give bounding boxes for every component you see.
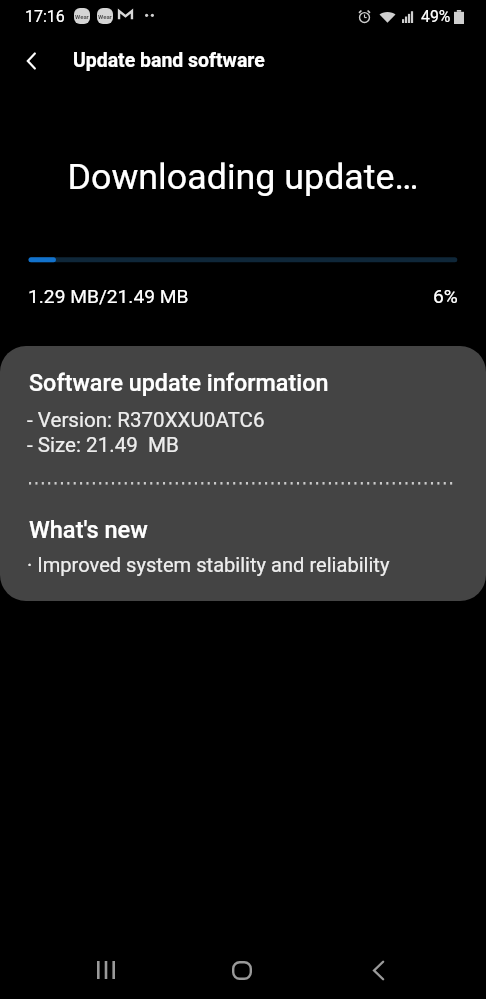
staticText: 17:16 (25, 7, 65, 26)
staticText: · Improved system stability and reliabil… (27, 553, 390, 577)
staticText: 49% (421, 7, 451, 26)
staticText: 1.29 MB/21.49 MB (28, 285, 189, 308)
staticText: Software update information (29, 369, 329, 396)
staticText: Wear (75, 13, 89, 20)
staticText: Downloading update… (0, 156, 486, 198)
staticText: What's new (29, 516, 148, 544)
button[interactable]: Navigate up (10, 39, 54, 83)
staticText: Wear (98, 13, 112, 20)
staticText: Update band software (73, 49, 265, 72)
staticText: - Version: R370XXU0ATC6 (27, 408, 265, 432)
button[interactable]: Home (206, 946, 278, 994)
button[interactable]: Back (342, 946, 414, 994)
staticText: 6% (433, 285, 458, 308)
staticText: - Size: 21.49 MB (27, 433, 179, 457)
button[interactable]: Recent apps (70, 946, 142, 994)
